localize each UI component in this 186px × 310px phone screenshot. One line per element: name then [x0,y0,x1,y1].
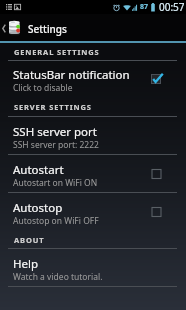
staticText: Autostop [13,200,63,216]
staticText: SERVER SETTINGS [14,102,92,112]
staticText: Autostart on WiFi ON [13,177,98,189]
staticText: Watch a video tutorial. [13,271,103,283]
button[interactable]: Autostart [144,161,170,187]
button[interactable]: Help [0,249,186,286]
staticText: Settings [28,22,67,36]
button[interactable]: Autostart [0,155,186,192]
staticText: 87 [140,2,149,12]
button[interactable]: Autostop [144,199,170,225]
staticText: Click to disable [13,82,73,94]
button[interactable]: SSH server port [0,117,186,154]
staticText: GENERAL SETTINGS [14,47,100,57]
button[interactable]: StatusBar notification [0,61,186,97]
staticText: Autostop on WiFi OFF [13,215,99,227]
button[interactable]: Autostop [0,193,186,231]
staticText: Help [13,256,39,272]
staticText: ABOUT [14,235,45,245]
button[interactable]: StatusBar notification [144,66,170,92]
button[interactable]: Navigate up [0,14,23,41]
staticText: Autostart [13,162,64,178]
staticText: StatusBar notification [13,67,130,83]
staticText: SSH server port: 2222 [13,139,99,151]
staticText: 00:57 [159,0,185,14]
staticText: SSH server port [13,124,97,140]
